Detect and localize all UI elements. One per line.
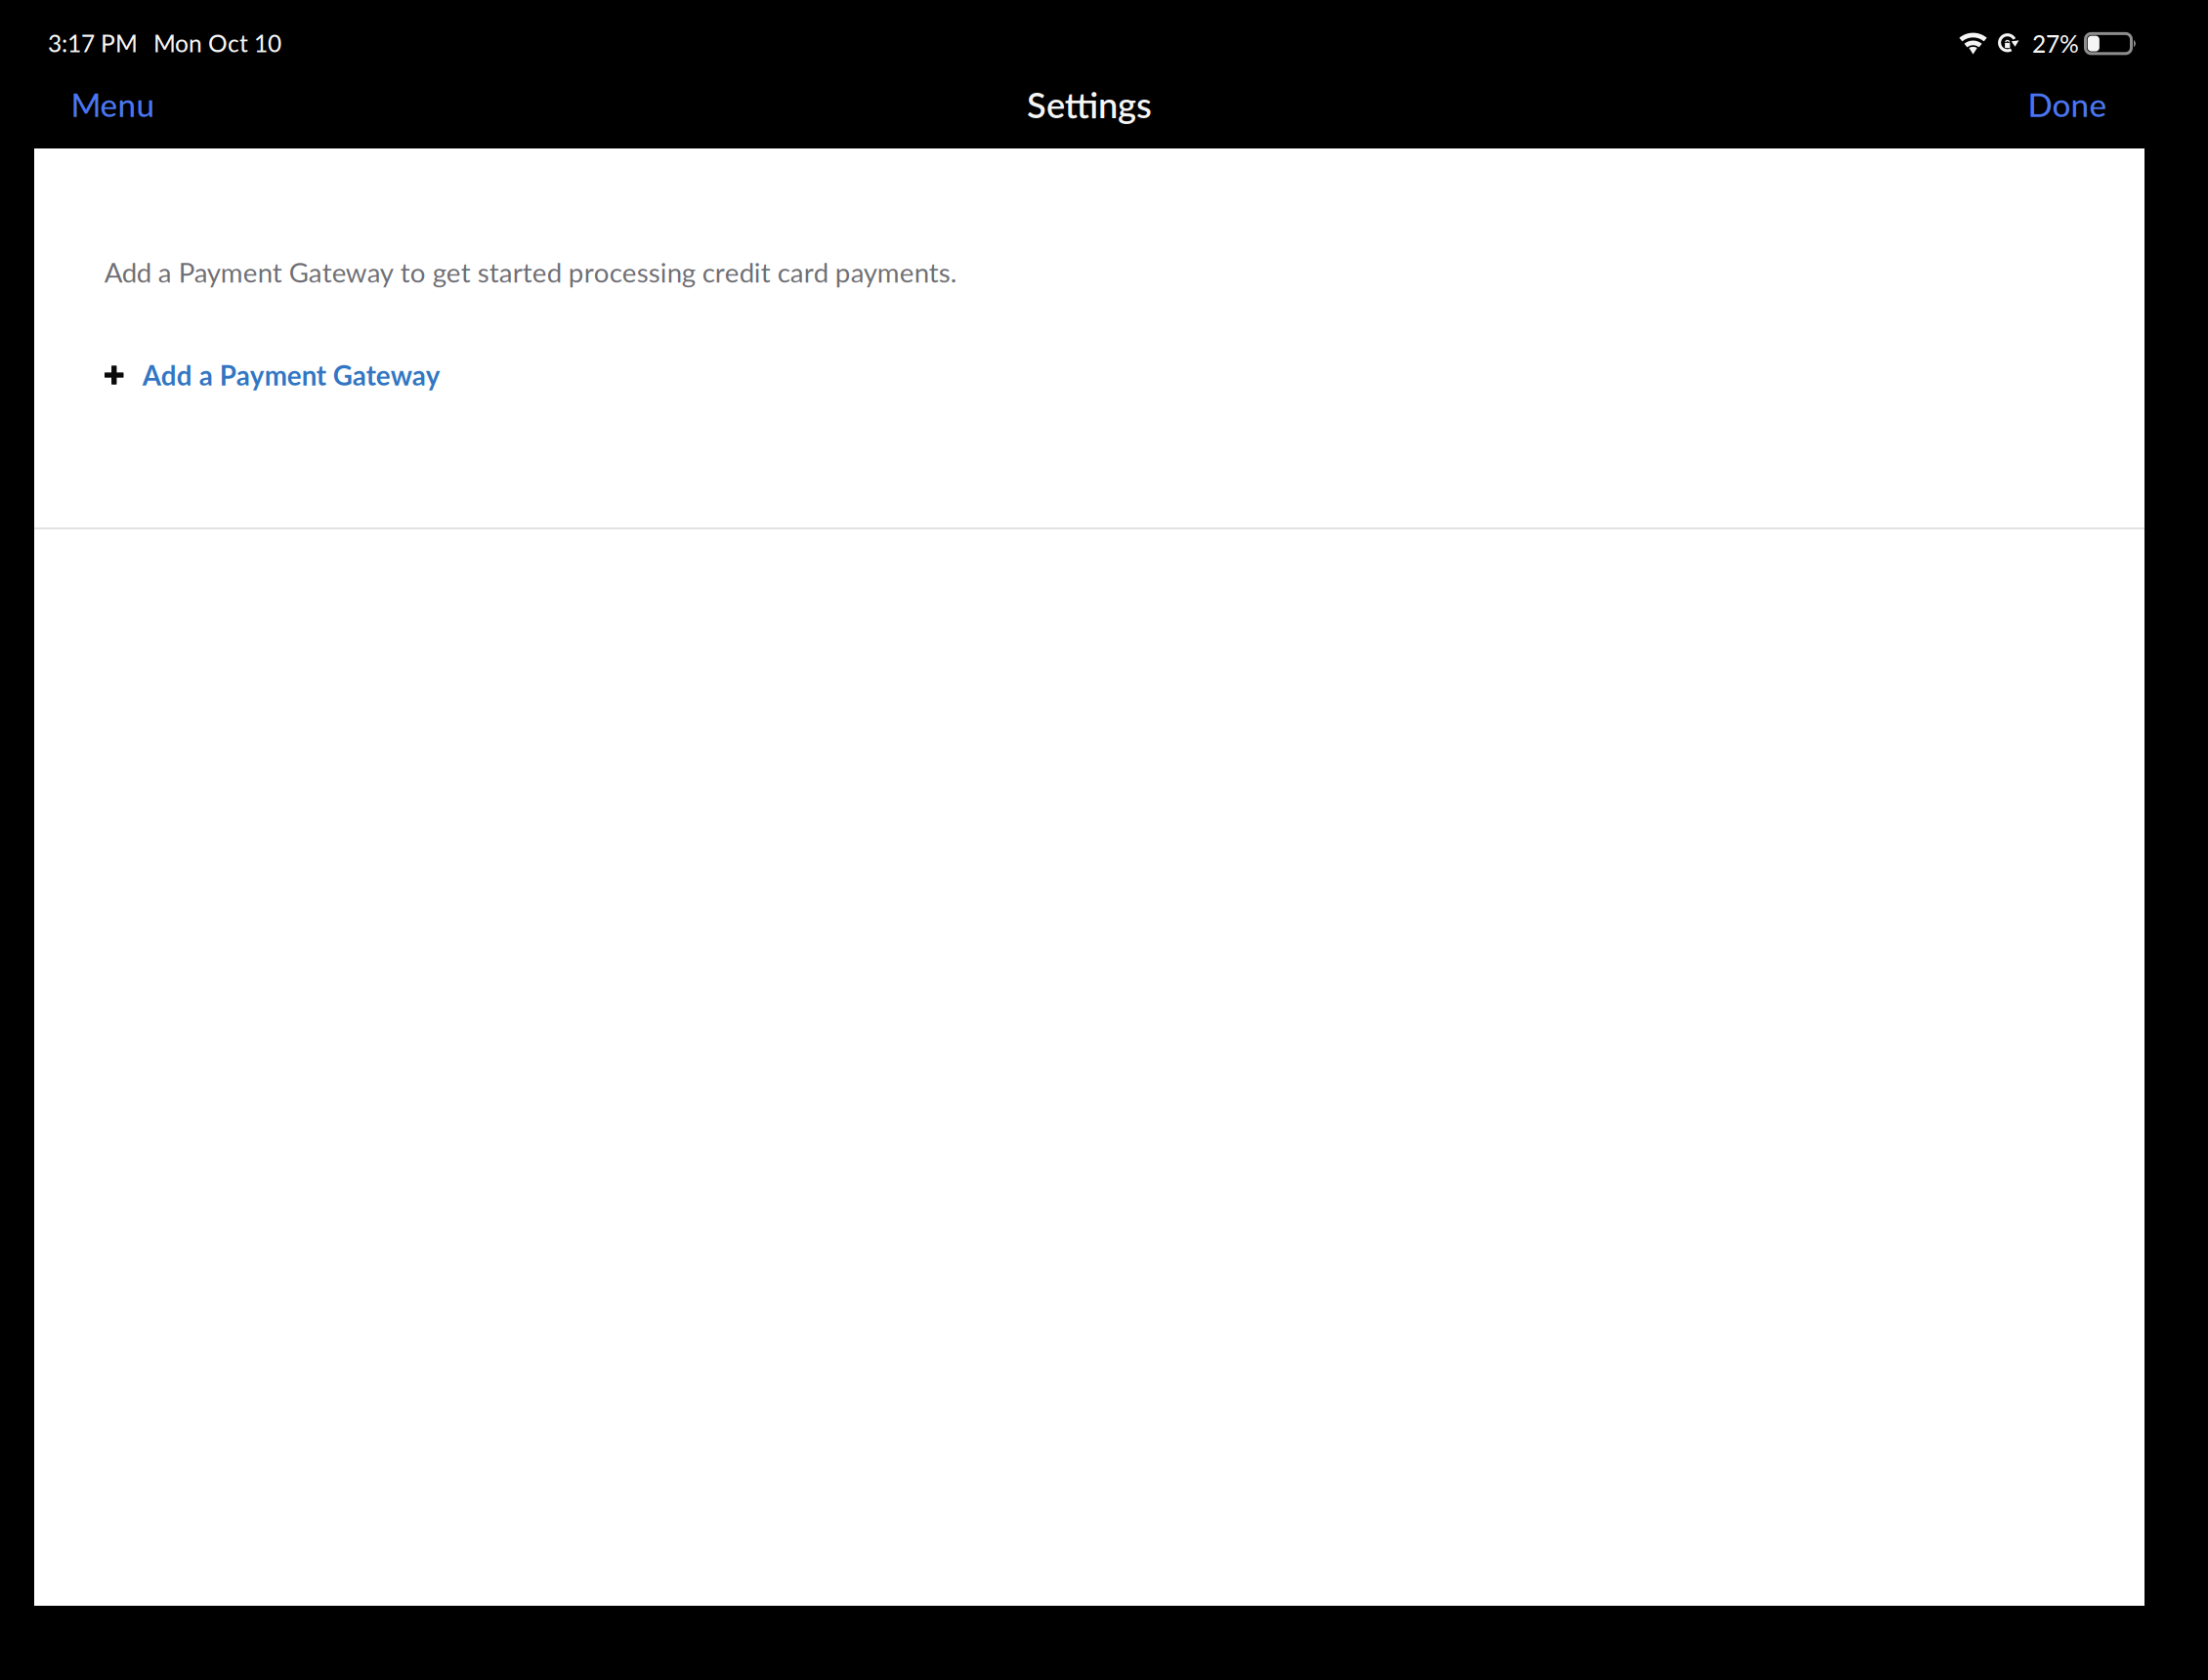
staticText: Add a Payment Gateway to get started pro… xyxy=(104,256,957,288)
staticText: 3:17 PM xyxy=(48,29,138,57)
button[interactable]: Done xyxy=(1931,61,2107,148)
staticText: Settings xyxy=(1027,83,1152,126)
staticText: Menu xyxy=(71,85,155,124)
staticText: Add a Payment Gateway xyxy=(142,359,440,391)
button[interactable]: Add a Payment Gateway xyxy=(34,332,2144,418)
button[interactable]: Menu xyxy=(71,61,247,148)
staticText: 27% xyxy=(2032,29,2079,58)
staticText: Done xyxy=(2028,85,2107,124)
staticText: Mon Oct 10 xyxy=(153,29,281,57)
